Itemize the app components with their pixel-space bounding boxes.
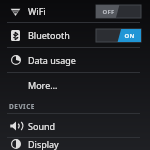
- button[interactable]: Bluetooth: [0, 23, 150, 47]
- staticText: Data usage: [28, 54, 76, 66]
- button[interactable]: More…: [0, 73, 150, 96]
- button[interactable]: Sound: [0, 114, 150, 137]
- button[interactable]: WiFi: [0, 0, 150, 22]
- button[interactable]: Display: [0, 138, 150, 150]
- staticText: ON: [124, 32, 135, 40]
- staticText: More…: [28, 79, 58, 91]
- staticText: OFF: [102, 8, 115, 16]
- staticText: Display: [28, 138, 59, 150]
- staticText: Bluetooth: [28, 29, 70, 41]
- staticText: DEVICE: [9, 102, 35, 111]
- button[interactable]: Data usage: [0, 48, 150, 72]
- staticText: WiFi: [28, 5, 46, 17]
- staticText: Sound: [28, 120, 56, 132]
- button[interactable]: Toggle on: [96, 29, 141, 42]
- button[interactable]: Toggle off: [96, 5, 141, 18]
